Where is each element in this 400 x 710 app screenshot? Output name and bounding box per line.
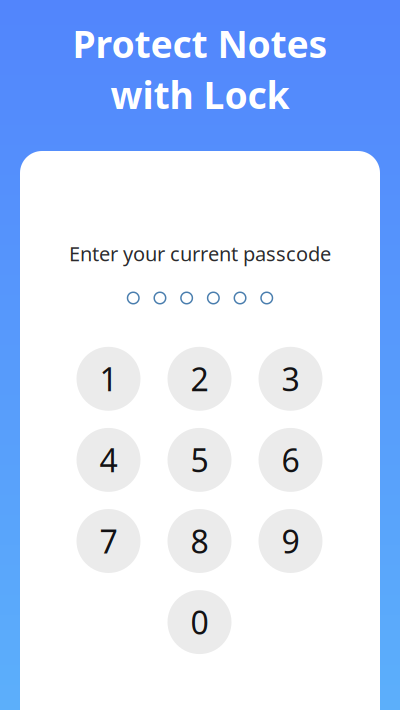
- staticText: 7: [99, 520, 117, 562]
- staticText: 9: [281, 520, 299, 562]
- staticText: with Lock: [110, 70, 289, 119]
- button[interactable]: 0: [167, 590, 231, 654]
- button[interactable]: 4: [76, 428, 140, 492]
- button[interactable]: 6: [258, 428, 322, 492]
- button[interactable]: 7: [76, 509, 140, 573]
- staticText: 8: [190, 520, 208, 562]
- staticText: 5: [190, 439, 208, 481]
- button[interactable]: 9: [258, 509, 322, 573]
- staticText: 3: [281, 358, 299, 400]
- button[interactable]: 8: [167, 509, 231, 573]
- staticText: 1: [99, 358, 117, 400]
- staticText: Enter your current passcode: [69, 240, 331, 267]
- staticText: 2: [190, 358, 208, 400]
- staticText: Protect Notes: [72, 19, 327, 68]
- staticText: 6: [281, 439, 299, 481]
- button[interactable]: 2: [167, 347, 231, 411]
- staticText: 0: [190, 601, 208, 643]
- button[interactable]: 5: [167, 428, 231, 492]
- staticText: 4: [99, 439, 117, 481]
- button[interactable]: 1: [76, 347, 140, 411]
- button[interactable]: 3: [258, 347, 322, 411]
